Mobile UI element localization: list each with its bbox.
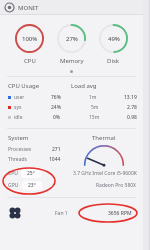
staticText: GPU xyxy=(8,182,19,189)
staticText: 13.19 xyxy=(124,94,137,101)
staticText: 2.78 xyxy=(127,104,137,111)
staticText: CPU xyxy=(24,57,36,65)
staticText: 0% xyxy=(53,114,61,121)
button[interactable]: 27% xyxy=(55,22,88,67)
staticText: 15m xyxy=(89,114,100,121)
staticText: Memory xyxy=(60,57,84,65)
button[interactable]: 23° xyxy=(22,181,42,190)
button[interactable]: 100% xyxy=(13,22,46,67)
staticText: Load avg xyxy=(71,82,97,90)
staticText: 100% xyxy=(22,35,38,43)
staticText: 49% xyxy=(108,35,120,43)
staticText: Fan 1 xyxy=(55,210,68,217)
button[interactable]: Monit menu xyxy=(5,3,14,12)
staticText: sys xyxy=(14,104,22,111)
staticText: Disk xyxy=(107,57,120,65)
staticText: Radeon Pro 580X xyxy=(96,182,137,189)
staticText: Threads xyxy=(8,156,27,163)
staticText: user xyxy=(14,94,25,101)
staticText: 1044 xyxy=(49,156,61,163)
staticText: MONIT xyxy=(18,4,39,12)
staticText: 76% xyxy=(51,94,61,101)
staticText: 3656 RPM xyxy=(108,210,132,217)
button[interactable]: Fan xyxy=(8,206,22,220)
staticText: 0.98 xyxy=(127,114,137,121)
staticText: idle xyxy=(14,114,23,121)
staticText: CPU xyxy=(8,170,18,177)
staticText: 5m xyxy=(91,104,99,111)
staticText: 1m xyxy=(89,94,97,101)
button[interactable]: 25° xyxy=(21,169,41,178)
staticText: 24% xyxy=(51,104,61,111)
staticText: 25° xyxy=(27,170,35,177)
staticText: Processes xyxy=(8,146,32,153)
staticText: 23° xyxy=(28,182,36,189)
staticText: CPU Usage xyxy=(8,82,40,90)
staticText: 27% xyxy=(66,35,78,43)
staticText: 271 xyxy=(52,146,61,153)
staticText: Thermal xyxy=(92,134,116,142)
button[interactable]: 49% xyxy=(97,22,130,67)
staticText: System xyxy=(8,134,29,142)
staticText: 3.7 GHz Intel Core i5-9600K xyxy=(73,170,137,177)
